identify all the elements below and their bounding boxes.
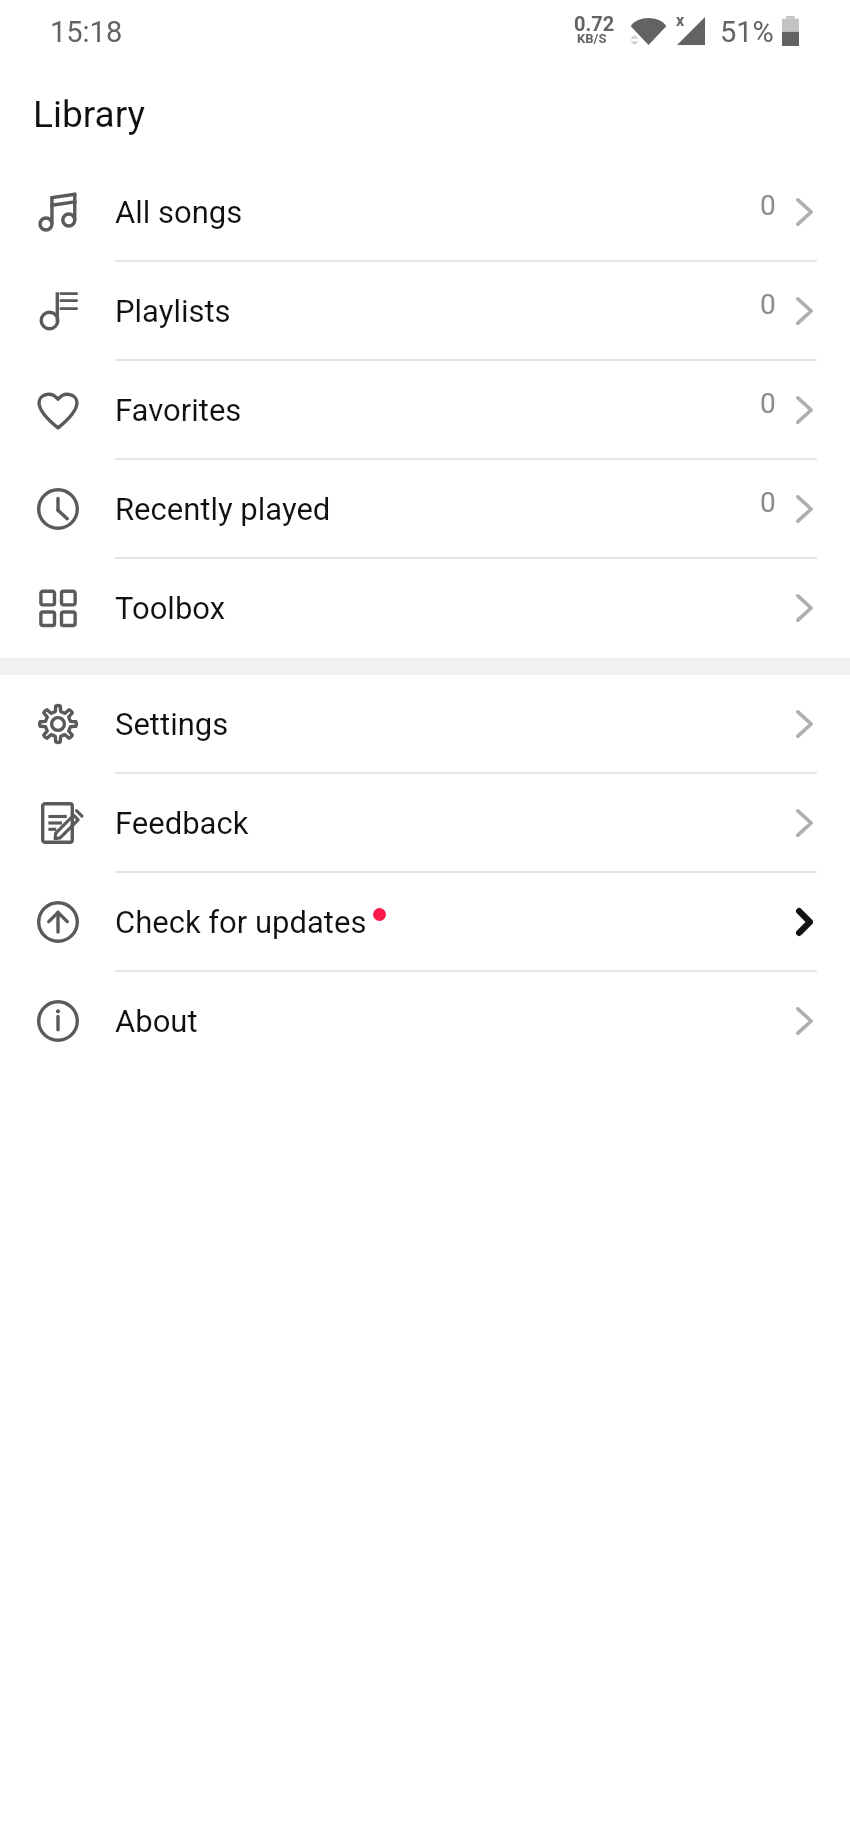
other: Open Recently played: [796, 495, 813, 523]
other: Open Toolbox: [796, 594, 813, 622]
staticText: 0: [760, 486, 776, 519]
staticText: Feedback: [115, 805, 249, 841]
other: Open All songs: [796, 198, 813, 226]
other: Open Feedback: [796, 809, 813, 837]
staticText: KB/S: [577, 31, 607, 46]
staticText: 0: [760, 189, 776, 222]
staticText: 51%: [720, 15, 774, 49]
button[interactable]: Favorites: [0, 361, 850, 460]
staticText: 0.72: [574, 12, 615, 35]
staticText: Playlists: [115, 293, 231, 329]
other: Open Settings: [796, 710, 813, 738]
button[interactable]: Check for updates: [0, 873, 850, 972]
staticText: Check for updates: [115, 904, 367, 940]
button[interactable]: Playlists: [0, 262, 850, 361]
staticText: 0: [760, 387, 776, 420]
staticText: 0: [760, 288, 776, 321]
staticText: x: [676, 11, 685, 30]
button[interactable]: All songs: [0, 163, 850, 262]
staticText: Favorites: [115, 392, 242, 428]
button[interactable]: Recently played: [0, 460, 850, 559]
button[interactable]: Settings: [0, 675, 850, 774]
staticText: Toolbox: [115, 590, 226, 626]
staticText: Settings: [115, 706, 229, 742]
staticText: Library: [33, 93, 146, 136]
other: Open Check for updates: [796, 908, 813, 936]
staticText: All songs: [115, 194, 243, 230]
staticText: About: [115, 1003, 198, 1039]
staticText: Recently played: [115, 491, 331, 527]
button[interactable]: About: [0, 972, 850, 1071]
button[interactable]: Feedback: [0, 774, 850, 873]
other: Open Playlists: [796, 297, 813, 325]
other: Open About: [796, 1007, 813, 1035]
button[interactable]: Toolbox: [0, 559, 850, 658]
other: Open Favorites: [796, 396, 813, 424]
staticText: 15:18: [50, 15, 123, 49]
